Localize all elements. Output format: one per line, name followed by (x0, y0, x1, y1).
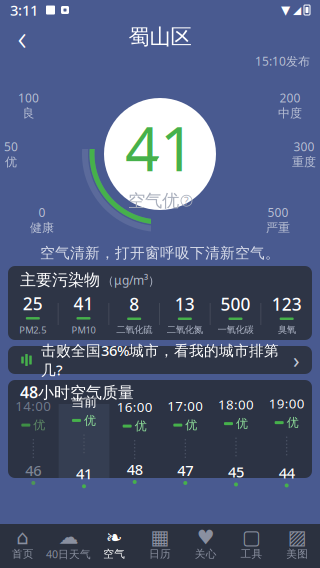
staticText: 500 (267, 204, 288, 220)
staticText: ▢ (242, 526, 261, 549)
button[interactable]: ▢ (229, 524, 274, 568)
staticText: 0 (38, 204, 45, 220)
staticText: 47 (177, 460, 193, 480)
staticText: 200 (279, 90, 300, 106)
staticText: 良 (22, 106, 34, 121)
staticText: 空气优 (128, 190, 179, 211)
staticText: 重度 (292, 155, 316, 169)
staticText: 空气清新，打开窗呼吸下清新空气。 (40, 244, 280, 262)
staticText: 45 (228, 462, 244, 481)
staticText: 健康 (30, 220, 54, 235)
staticText: 46 (25, 460, 41, 480)
staticText: 关心 (195, 547, 217, 560)
staticText: 3:11 (10, 0, 38, 20)
staticText: › (293, 346, 300, 374)
staticText: 优 (84, 413, 96, 428)
button[interactable]: ❧ (91, 524, 137, 568)
staticText: 15:10发布 (255, 53, 310, 69)
staticText: 空气 (103, 547, 125, 560)
staticText: 蜀山区 (128, 24, 191, 50)
staticText: 严重 (266, 220, 290, 235)
staticText: PM2.5 (19, 324, 46, 336)
staticText: ♥ (197, 526, 215, 549)
staticText: 主要污染物 (20, 270, 100, 290)
staticText: ▦ (150, 526, 169, 549)
staticText: 19:00 (269, 394, 305, 412)
button[interactable]: ⌂ (0, 524, 46, 568)
staticText: 击败全国36%城市，看我的城市排第几? (41, 340, 279, 379)
staticText: ❧ (106, 526, 123, 549)
staticText: 工具 (240, 547, 262, 560)
staticText: 当前 (71, 394, 97, 410)
button[interactable]: ▨ (274, 524, 320, 568)
staticText: PM10 (71, 324, 95, 336)
staticText: ‹ (17, 14, 26, 60)
staticText: 44 (279, 463, 295, 482)
staticText: （μg/m³） (102, 272, 160, 288)
staticText: 41 (73, 292, 93, 315)
staticText: 25 (23, 292, 43, 315)
staticText: 臭氧 (278, 324, 296, 335)
staticText: 123 (272, 292, 302, 315)
button[interactable]: 击败全国36%城市，看我的城市排第几? (8, 346, 312, 374)
staticText: ◢ (293, 4, 301, 16)
staticText: 首页 (12, 547, 34, 560)
staticText: 41 (76, 464, 92, 483)
staticText: 美图 (286, 547, 308, 560)
staticText: 48小时空气质量 (20, 381, 134, 403)
staticText: 优 (33, 418, 45, 432)
staticText: ▼ (281, 3, 290, 17)
staticText: 18:00 (218, 395, 254, 413)
staticText: ☁ (59, 526, 79, 548)
button[interactable]: ☁ (46, 524, 91, 568)
staticText: 优 (287, 415, 299, 430)
staticText: 48 (127, 459, 143, 479)
staticText: ⌂ (16, 526, 29, 549)
staticText: 中度 (278, 106, 302, 121)
button[interactable]: ♥ (183, 524, 229, 568)
staticText: 300 (293, 139, 314, 155)
button[interactable]: Back (0, 20, 44, 54)
staticText: 40日天气 (46, 547, 91, 561)
staticText: 13 (175, 292, 195, 315)
staticText: 50 (4, 139, 18, 155)
staticText: 优 (236, 416, 248, 431)
staticText: 16:00 (117, 398, 153, 416)
staticText: 优 (185, 418, 197, 432)
staticText: 优 (5, 155, 17, 169)
staticText: 500 (220, 292, 250, 315)
staticText: 14:00 (15, 397, 51, 415)
staticText: 二氧化氮 (167, 324, 203, 335)
staticText: 日历 (149, 547, 171, 560)
staticText: 优 (135, 419, 147, 433)
staticText: 一氧化碳 (217, 324, 253, 335)
staticText: 41 (125, 107, 195, 188)
staticText: 17:00 (167, 397, 203, 415)
staticText: 8 (129, 292, 139, 315)
staticText: ? (184, 194, 189, 208)
staticText: 100 (18, 90, 39, 106)
staticText: ▨ (288, 526, 307, 549)
staticText: 二氧化硫 (116, 324, 152, 335)
staticText: 轻度 (148, 86, 172, 101)
button[interactable]: ▦ (137, 524, 183, 568)
